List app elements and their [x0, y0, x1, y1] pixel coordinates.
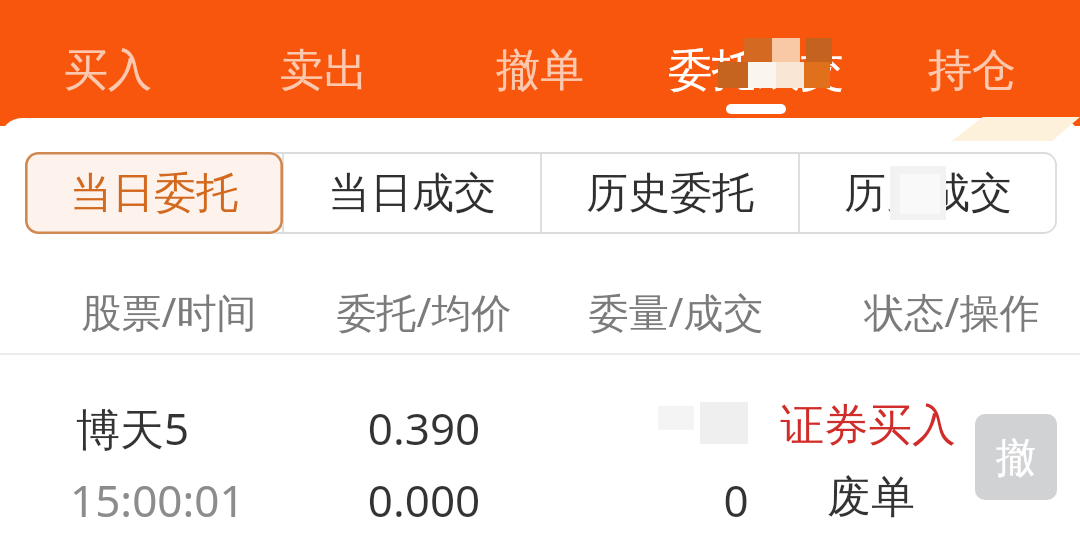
staticText: 委托/均价: [284, 284, 564, 339]
button[interactable]: 博天5: [0, 356, 1080, 545]
button[interactable]: 卖出: [216, 0, 432, 126]
staticText: 0: [596, 470, 876, 530]
button[interactable]: 持仓: [864, 0, 1080, 126]
staticText: 博天5: [76, 398, 356, 458]
staticText: 当日委托: [70, 167, 238, 220]
staticText: 持仓: [928, 43, 1016, 98]
staticText: 撤: [996, 432, 1036, 482]
staticText: 历史成交: [844, 167, 1012, 220]
staticText: 历史委托: [586, 167, 754, 220]
button[interactable]: 买入: [0, 0, 216, 126]
button[interactable]: 撤单 Cancel order: [975, 414, 1057, 500]
button[interactable]: 当日成交: [283, 152, 541, 234]
button[interactable]: 委托成交: [648, 0, 864, 126]
button[interactable]: 当日委托: [25, 152, 283, 234]
button[interactable]: 历史委托: [541, 152, 799, 234]
staticText: 卖出: [280, 43, 368, 98]
staticText: 证券买入: [772, 398, 964, 453]
staticText: 委量/成交: [536, 284, 816, 339]
button[interactable]: 历史成交: [799, 152, 1057, 234]
staticText: 0.000: [284, 470, 564, 530]
staticText: 买入: [64, 43, 152, 98]
staticText: 股票/时间: [29, 284, 309, 339]
staticText: 当日成交: [328, 167, 496, 220]
staticText: 废单: [778, 470, 964, 525]
staticText: 状态/操作: [812, 284, 1080, 339]
staticText: 15:00:01: [70, 470, 350, 530]
button[interactable]: 撤单: [432, 0, 648, 126]
staticText: 0.390: [284, 398, 564, 458]
staticText: 委托成交: [668, 43, 844, 98]
staticText: 撤单: [496, 43, 584, 98]
